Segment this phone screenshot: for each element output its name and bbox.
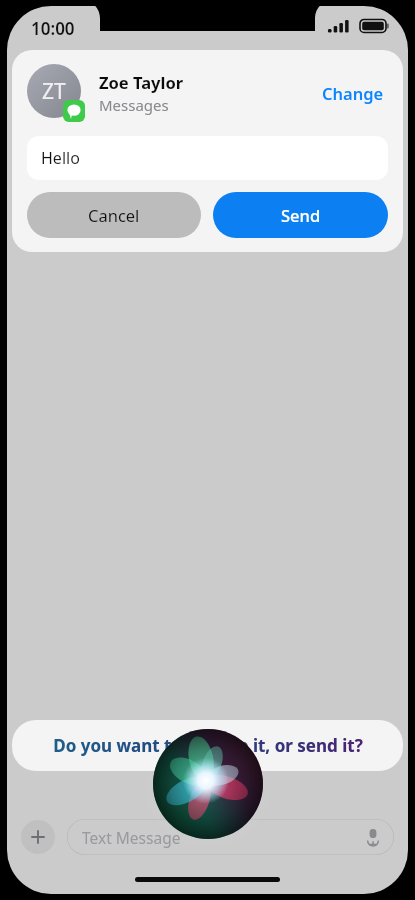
staticText: Messages <box>99 95 169 115</box>
button[interactable]: Text Message <box>67 819 394 855</box>
button[interactable]: Hello <box>27 136 388 180</box>
button[interactable]: Change <box>318 78 388 108</box>
staticText: Change <box>322 82 384 104</box>
staticText: Hello <box>41 147 80 169</box>
staticText: 10:00 <box>31 17 75 40</box>
button[interactable]: Dictate <box>362 826 384 848</box>
button[interactable]: Cancel <box>27 192 201 238</box>
button[interactable]: Do you want to change it, or send it? <box>12 720 403 771</box>
staticText: Send <box>281 204 321 226</box>
staticText: Zoe Taylor <box>99 71 184 93</box>
other: Siri <box>153 729 263 839</box>
button[interactable]: Send <box>213 192 388 238</box>
button[interactable]: Add attachment <box>21 820 55 854</box>
staticText: Cancel <box>88 204 140 226</box>
staticText: Do you want to change it, or send it? <box>53 734 363 757</box>
staticText: ZT <box>42 77 66 106</box>
staticText: Text Message <box>82 827 181 848</box>
